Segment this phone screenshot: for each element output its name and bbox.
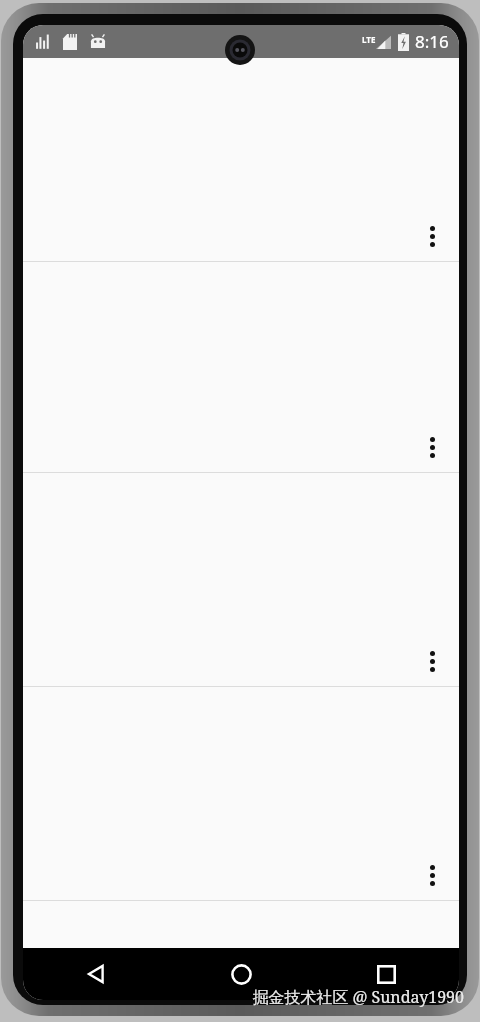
button[interactable]: More options	[419, 648, 445, 674]
button[interactable]: Back	[23, 948, 169, 1000]
button[interactable]: More options	[419, 434, 445, 460]
button[interactable]: More options	[419, 862, 445, 888]
staticText: 8:16	[415, 30, 449, 53]
button[interactable]: More options	[23, 687, 459, 900]
button[interactable]: More options	[23, 262, 459, 472]
button[interactable]: More options	[23, 58, 459, 261]
staticText: 掘金技术社区 @ Sunday1990	[252, 986, 464, 1008]
button[interactable]: More options	[419, 223, 445, 249]
button[interactable]: More options	[23, 473, 459, 686]
button[interactable]: Home	[169, 948, 314, 1000]
button[interactable]: Recent apps	[314, 948, 459, 1000]
staticText: LTE	[362, 34, 376, 45]
